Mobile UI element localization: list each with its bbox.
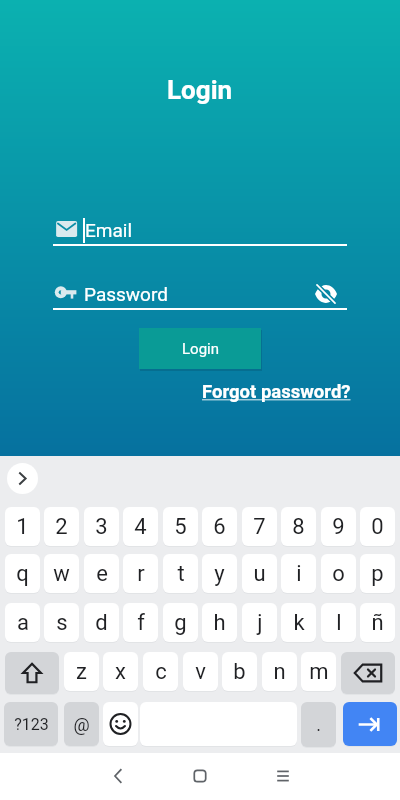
staticText: x [115,659,126,685]
button[interactable]: p [360,554,395,593]
button[interactable]: 1 [5,507,40,546]
staticText: m [309,659,329,685]
staticText: j [257,610,263,636]
button[interactable]: Show password [315,283,337,305]
staticText: y [214,561,225,587]
button[interactable]: f [123,603,158,642]
button[interactable]: 6 [202,507,237,546]
button[interactable]: Emoji [103,702,138,746]
button[interactable]: @ [64,702,99,746]
button[interactable]: j [242,603,277,642]
staticText: ?123 [14,715,49,734]
staticText: Password [84,283,168,305]
staticText: o [332,561,345,587]
button[interactable]: ?123 [4,702,58,746]
button[interactable]: u [242,554,277,593]
button[interactable]: x [103,652,138,691]
button[interactable]: Recent apps [263,756,303,796]
staticText: s [56,610,68,636]
button[interactable]: ñ [360,603,395,642]
button[interactable]: t [163,554,198,593]
button[interactable]: s [44,603,79,642]
staticText: 5 [174,514,187,540]
staticText: 1 [16,514,29,540]
staticText: 6 [213,514,226,540]
button[interactable]: m [301,652,336,691]
staticText: f [137,610,145,636]
button[interactable]: n [262,652,297,691]
staticText: z [76,659,87,685]
staticText: i [296,561,302,587]
staticText: n [273,659,286,685]
staticText: 8 [292,514,305,540]
button[interactable]: Back [98,756,138,796]
button[interactable]: r [123,554,158,593]
staticText: a [17,610,29,636]
staticText: e [96,561,108,587]
button[interactable]: 9 [321,507,356,546]
staticText: Login [167,75,233,105]
button[interactable]: Login [139,328,261,369]
button[interactable]: 0 [360,507,395,546]
staticText: c [155,659,167,685]
staticText: l [336,610,342,636]
button[interactable]: 3 [84,507,119,546]
staticText: ñ [371,610,384,636]
button[interactable]: 2 [44,507,79,546]
staticText: 3 [95,514,108,540]
staticText: q [16,561,29,587]
button[interactable]: b [222,652,257,691]
staticText: 7 [253,514,266,540]
staticText: 2 [55,514,68,540]
button[interactable]: . [301,702,336,747]
staticText: b [233,659,246,685]
button[interactable]: l [321,603,356,642]
button[interactable]: a [5,603,40,642]
staticText: Forgot password? [202,381,351,403]
button[interactable]: i [281,554,316,593]
staticText: g [174,610,187,636]
staticText: Email [85,219,133,241]
staticText: v [195,659,206,685]
staticText: r [137,561,145,587]
staticText: t [177,561,185,587]
button[interactable]: e [84,554,119,593]
button[interactable]: 4 [123,507,158,546]
button[interactable]: y [202,554,237,593]
button[interactable]: Enter [343,702,397,746]
button[interactable]: z [64,652,99,691]
button[interactable]: o [321,554,356,593]
button[interactable]: Backspace [341,652,395,694]
button[interactable]: k [281,603,316,642]
button[interactable]: c [143,652,178,691]
button[interactable]: Forgot password? [195,380,351,404]
button[interactable]: d [84,603,119,642]
staticText: u [253,561,266,587]
button[interactable]: 7 [242,507,277,546]
staticText: @ [73,714,90,735]
button[interactable]: Shift [5,652,59,694]
staticText: 4 [134,514,147,540]
button[interactable]: 5 [163,507,198,546]
button[interactable]: Home [180,756,220,796]
staticText: Login [182,340,219,358]
staticText: h [213,610,226,636]
staticText: d [95,610,108,636]
staticText: p [371,561,384,587]
button[interactable]: q [5,554,40,593]
button[interactable]: More suggestions [7,463,38,494]
staticText: . [316,714,321,735]
button[interactable]: w [44,554,79,593]
staticText: 0 [371,514,384,540]
staticText: w [53,561,70,587]
button[interactable]: h [202,603,237,642]
staticText: 9 [332,514,345,540]
staticText: k [293,610,305,636]
button[interactable]: v [183,652,218,691]
button[interactable]: 8 [281,507,316,546]
button[interactable]: g [163,603,198,642]
